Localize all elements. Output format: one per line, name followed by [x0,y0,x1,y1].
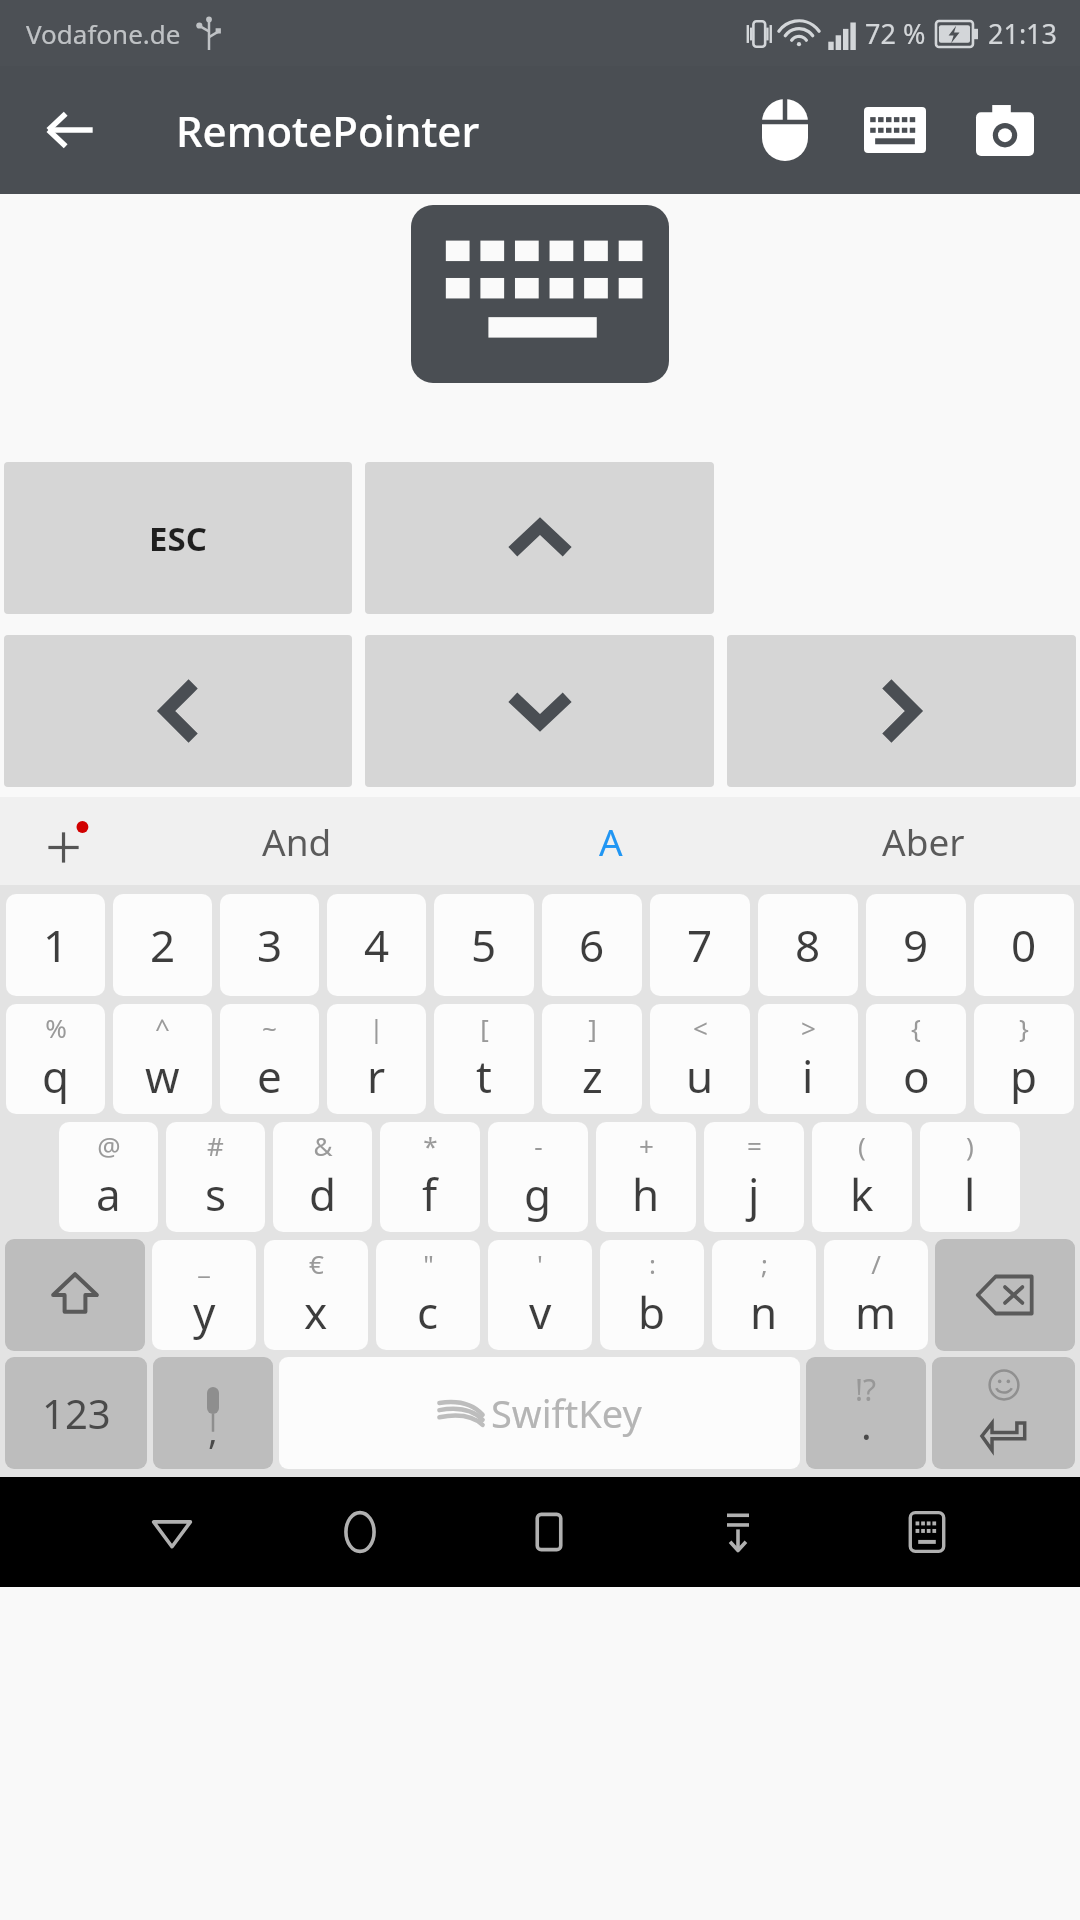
staticText: 1 [43,915,69,975]
button[interactable]: Right [727,635,1076,787]
button[interactable]: Home [305,1477,415,1587]
button[interactable]: 5 [434,894,534,996]
button[interactable]: Keyboard [840,75,950,185]
button[interactable]: 9 [866,894,966,996]
button[interactable]: + [596,1122,696,1232]
staticText: ^ [155,1010,170,1045]
staticText: j [748,1164,760,1224]
button[interactable]: Hide keyboard [683,1477,793,1587]
button[interactable]: Back [117,1477,227,1587]
staticText: / [871,1246,881,1281]
button[interactable]: _ [152,1240,256,1350]
button[interactable]: Left [4,635,352,787]
staticText: x [304,1282,328,1342]
staticText: z [582,1046,603,1106]
staticText: ) [966,1128,974,1163]
button[interactable]: { [866,1004,966,1114]
staticText: ~ [262,1010,277,1045]
staticText: f [422,1164,438,1224]
staticText: Aber [882,816,965,866]
button[interactable]: Backspace [935,1239,1075,1351]
button[interactable]: ESC [4,462,352,614]
button[interactable]: / [824,1240,928,1350]
staticText: ESC [149,516,207,561]
button[interactable]: < [650,1004,750,1114]
button[interactable]: Show keyboard [411,205,669,383]
button[interactable]: € [264,1240,368,1350]
button[interactable]: Switch keyboard [872,1477,982,1587]
button[interactable]: ^ [113,1004,212,1114]
button[interactable]: Enter [932,1357,1075,1469]
button[interactable]: " [376,1240,480,1350]
button[interactable]: Up [365,462,714,614]
button[interactable]: 123 [5,1357,147,1469]
button[interactable]: 7 [650,894,750,996]
button[interactable]: Space [279,1357,800,1469]
button[interactable]: ; [712,1240,816,1350]
button[interactable]: Aber [767,797,1080,885]
button[interactable]: 2 [113,894,212,996]
staticText: b [638,1282,666,1342]
button[interactable]: Voice input [153,1357,273,1469]
button[interactable]: Recents [494,1477,604,1587]
button[interactable]: @ [59,1122,158,1232]
staticText: 8 [795,915,821,975]
staticText: 4 [364,915,390,975]
staticText: 123 [42,1386,111,1440]
staticText: } [1019,1010,1029,1045]
staticText: € [309,1246,324,1281]
button[interactable]: Add [0,797,140,885]
staticText: ; [761,1246,768,1281]
button[interactable]: # [166,1122,265,1232]
staticText: SwiftKey [491,1387,642,1439]
staticText: < [693,1010,708,1045]
staticText: & [313,1128,333,1163]
button[interactable]: Down [365,635,714,787]
button[interactable]: A [454,797,767,885]
staticText: e [257,1046,282,1106]
button[interactable]: | [327,1004,426,1114]
staticText: * [423,1128,438,1163]
button[interactable]: ] [542,1004,642,1114]
button[interactable]: 6 [542,894,642,996]
button[interactable]: } [974,1004,1074,1114]
staticText: ] [588,1010,597,1045]
staticText: _ [198,1246,210,1281]
staticText: i [802,1046,814,1106]
button[interactable]: > [758,1004,858,1114]
button[interactable]: 8 [758,894,858,996]
button[interactable]: Screenshot [950,75,1060,185]
button[interactable]: - [488,1122,588,1232]
button[interactable]: 4 [327,894,426,996]
button[interactable]: % [6,1004,105,1114]
button[interactable]: ~ [220,1004,319,1114]
button[interactable]: ( [812,1122,912,1232]
button[interactable]: Mouse mode [730,75,840,185]
button[interactable]: 0 [974,894,1074,996]
button[interactable]: 3 [220,894,319,996]
button[interactable]: !? [806,1357,926,1469]
button[interactable]: * [380,1122,480,1232]
button[interactable]: Back [22,82,118,178]
button[interactable]: ' [488,1240,592,1350]
staticText: @ [97,1128,121,1163]
staticText: y [193,1282,216,1342]
button[interactable]: ) [920,1122,1020,1232]
button[interactable]: = [704,1122,804,1232]
button[interactable]: And [140,797,454,885]
staticText: !? [855,1369,877,1410]
staticText: [ [480,1010,489,1045]
button[interactable]: 1 [6,894,105,996]
staticText: A [599,816,623,866]
staticText: g [524,1164,552,1224]
button[interactable]: Shift [5,1239,145,1351]
button[interactable]: & [273,1122,372,1232]
button[interactable]: [ [434,1004,534,1114]
staticText: d [309,1164,337,1224]
staticText: h [632,1164,660,1224]
staticText: 72 % [865,15,926,52]
staticText: w [145,1046,180,1106]
staticText: v [529,1282,552,1342]
staticText: | [369,1010,384,1045]
button[interactable]: : [600,1240,704,1350]
